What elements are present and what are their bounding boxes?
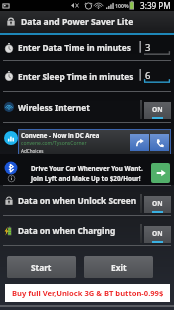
button[interactable]: Directions — [130, 134, 149, 151]
button[interactable]: Exit — [84, 256, 153, 278]
button[interactable]: Toggle on — [140, 96, 171, 118]
button[interactable]: Enter Sleep Time in minutes — [0, 61, 174, 91]
staticText: Data on when Unlock Screen — [18, 195, 140, 206]
staticText: Wireless Internet — [18, 102, 140, 113]
button[interactable]: Convene - Now in DC Area — [18, 129, 171, 156]
button[interactable]: Start — [7, 256, 76, 278]
button[interactable]: Data on when Charging — [0, 216, 174, 245]
staticText: 100% — [115, 2, 129, 9]
staticText: Drive Your Car Whenever You Want. — [31, 164, 143, 173]
staticText: 6 — [145, 69, 151, 82]
button[interactable]: Toggle on — [140, 190, 171, 212]
staticText: Exit — [111, 262, 127, 273]
staticText: Convene - Now in DC Area — [21, 131, 100, 139]
button[interactable]: Data on when Unlock Screen — [0, 186, 174, 215]
button[interactable]: 3 — [139, 37, 171, 59]
button[interactable]: Call — [150, 134, 169, 151]
staticText: 3:39 PM — [140, 0, 171, 11]
button[interactable]: 6 — [139, 65, 171, 87]
button[interactable]: Buy full Ver,Unlock 3G & BT button-0.99$ — [5, 284, 170, 302]
staticText: Join Lyft and Make Up to $20/Hour! — [31, 174, 141, 183]
staticText: Enter Sleep Time in minutes — [18, 71, 139, 82]
staticText: Data on when Charging — [18, 225, 140, 236]
staticText: ON — [152, 199, 163, 208]
staticText: Data and Power Saver Lite — [21, 16, 134, 28]
button[interactable]: Go — [151, 163, 170, 183]
button[interactable]: Toggle on — [140, 220, 171, 242]
staticText: 3 — [145, 41, 151, 54]
staticText: AdChoices — [21, 148, 44, 154]
staticText: ON — [152, 105, 163, 114]
staticText: Start — [31, 262, 52, 273]
button[interactable]: Drive Your Car Whenever You Want. — [0, 154, 174, 185]
staticText: Buy full Ver,Unlock 3G & BT button-0.99$ — [12, 288, 164, 298]
staticText: convene.com/TysonsCorner — [21, 140, 87, 147]
button[interactable]: Enter Data Time in minutes — [0, 35, 174, 60]
staticText: ON — [152, 229, 163, 238]
button[interactable]: Wireless Internet — [0, 92, 174, 122]
staticText: Enter Data Time in minutes — [18, 42, 139, 53]
